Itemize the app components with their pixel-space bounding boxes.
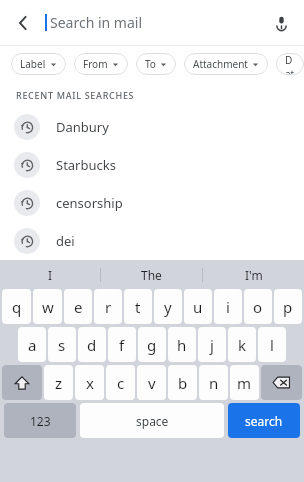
- button[interactable]: Attachment: [184, 53, 268, 75]
- staticText: g: [147, 335, 157, 355]
- button[interactable]: Starbucks: [0, 146, 304, 184]
- button[interactable]: Date: [276, 53, 304, 75]
- button[interactable]: The: [101, 260, 202, 289]
- staticText: n: [209, 373, 219, 393]
- staticText: a: [28, 335, 37, 355]
- staticText: Starbucks: [56, 156, 116, 174]
- button[interactable]: From: [74, 53, 128, 75]
- staticText: 123: [30, 413, 51, 429]
- button[interactable]: y: [154, 289, 182, 324]
- staticText: b: [178, 373, 188, 393]
- staticText: RECENT MAIL SEARCHES: [16, 89, 135, 101]
- button[interactable]: l: [258, 327, 286, 362]
- staticText: Attachment: [193, 57, 248, 71]
- staticText: dei: [56, 232, 75, 250]
- button[interactable]: Backspace: [261, 365, 302, 400]
- button[interactable]: Shift: [2, 365, 42, 400]
- staticText: i: [226, 297, 230, 317]
- staticText: w: [42, 297, 54, 317]
- button[interactable]: Label: [11, 53, 66, 75]
- staticText: x: [86, 373, 94, 393]
- button[interactable]: s: [48, 327, 76, 362]
- button[interactable]: u: [184, 289, 212, 324]
- staticText: Search in mail: [50, 13, 143, 32]
- staticText: The: [141, 267, 162, 283]
- button[interactable]: e: [64, 289, 92, 324]
- staticText: I: [48, 267, 53, 283]
- staticText: Date: [285, 53, 295, 75]
- button[interactable]: d: [78, 327, 106, 362]
- button[interactable]: g: [138, 327, 166, 362]
- staticText: c: [117, 373, 125, 393]
- staticText: p: [283, 297, 293, 317]
- button[interactable]: m: [230, 365, 259, 400]
- staticText: z: [55, 373, 63, 393]
- button[interactable]: 123: [4, 403, 76, 438]
- staticText: q: [12, 297, 22, 317]
- button[interactable]: i: [214, 289, 242, 324]
- button[interactable]: q: [2, 289, 31, 324]
- staticText: d: [87, 335, 97, 355]
- staticText: s: [58, 335, 66, 355]
- button[interactable]: p: [274, 289, 302, 324]
- staticText: search: [245, 413, 283, 429]
- button[interactable]: censorship: [0, 184, 304, 222]
- staticText: I'm: [245, 267, 263, 283]
- button[interactable]: t: [124, 289, 152, 324]
- button[interactable]: Danbury: [0, 108, 304, 146]
- button[interactable]: z: [44, 365, 73, 400]
- staticText: k: [238, 335, 247, 355]
- staticText: From: [83, 57, 108, 71]
- button[interactable]: space: [80, 403, 224, 438]
- button[interactable]: Voice search: [259, 0, 304, 45]
- button[interactable]: x: [75, 365, 104, 400]
- staticText: Danbury: [56, 118, 109, 136]
- staticText: space: [136, 413, 169, 429]
- button[interactable]: r: [94, 289, 122, 324]
- staticText: m: [237, 373, 252, 393]
- staticText: l: [270, 335, 274, 355]
- button[interactable]: c: [106, 365, 135, 400]
- staticText: Label: [20, 57, 46, 71]
- button[interactable]: v: [137, 365, 166, 400]
- button[interactable]: k: [228, 327, 256, 362]
- staticText: v: [148, 373, 156, 393]
- button[interactable]: o: [244, 289, 272, 324]
- staticText: censorship: [56, 194, 123, 212]
- staticText: h: [177, 335, 187, 355]
- staticText: t: [135, 297, 141, 317]
- staticText: To: [145, 57, 156, 71]
- staticText: j: [210, 335, 214, 355]
- staticText: y: [164, 297, 172, 317]
- staticText: f: [119, 335, 125, 355]
- staticText: u: [193, 297, 203, 317]
- button[interactable]: search: [228, 403, 300, 438]
- staticText: e: [74, 297, 83, 317]
- button[interactable]: j: [198, 327, 226, 362]
- button[interactable]: h: [168, 327, 196, 362]
- button[interactable]: I'm: [203, 260, 304, 289]
- button[interactable]: f: [108, 327, 136, 362]
- button[interactable]: b: [168, 365, 197, 400]
- button[interactable]: w: [33, 289, 62, 324]
- button[interactable]: To: [136, 53, 176, 75]
- button[interactable]: I: [0, 260, 100, 289]
- button[interactable]: a: [18, 327, 46, 362]
- button[interactable]: n: [199, 365, 228, 400]
- button[interactable]: dei: [0, 222, 304, 260]
- staticText: o: [253, 297, 263, 317]
- button[interactable]: Back: [0, 0, 45, 45]
- staticText: r: [105, 297, 112, 317]
